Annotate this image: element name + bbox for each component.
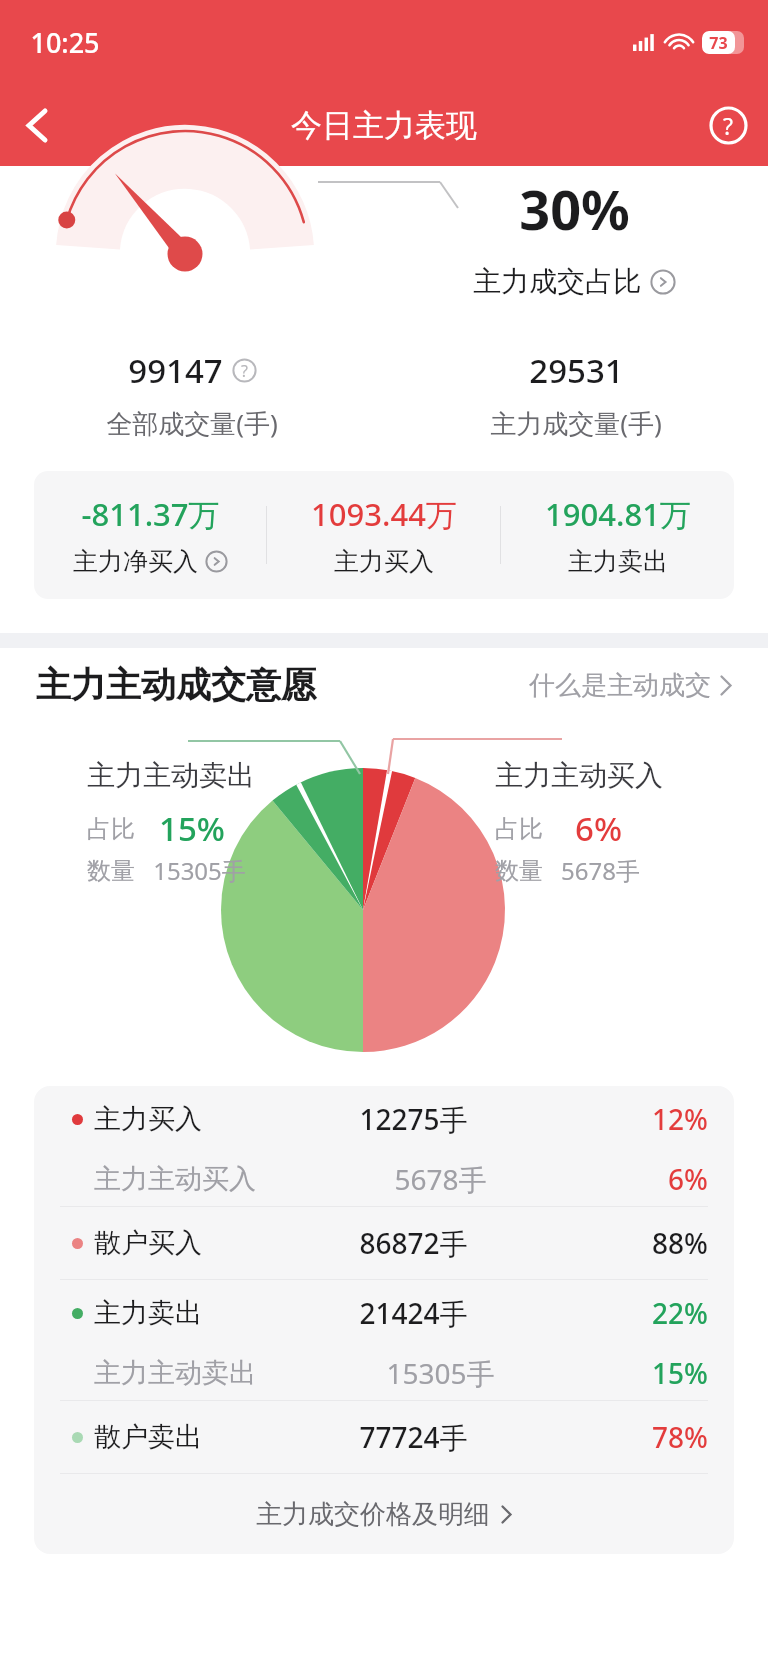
- button[interactable]: Help: [688, 84, 768, 166]
- staticText: 数量: [87, 856, 135, 886]
- button[interactable]: 主力成交价格及明细: [34, 1474, 734, 1554]
- staticText: 1904.81万: [545, 493, 691, 535]
- staticText: 主力成交占比: [473, 264, 641, 299]
- staticText: 主力卖出: [94, 1296, 202, 1330]
- staticText: 6%: [575, 806, 622, 851]
- staticText: 30%: [519, 172, 630, 246]
- staticText: 主力主动卖出: [87, 758, 255, 793]
- staticText: 29531: [529, 348, 624, 393]
- staticText: 15%: [652, 1354, 708, 1392]
- button[interactable]: 主力买入: [34, 1086, 734, 1206]
- staticText: -811.37万: [81, 493, 220, 535]
- staticText: 78%: [652, 1418, 708, 1456]
- staticText: 99147: [128, 348, 223, 393]
- staticText: 6%: [668, 1160, 708, 1198]
- staticText: 15305手: [386, 1354, 495, 1392]
- staticText: 15%: [159, 806, 225, 851]
- staticText: 散户卖出: [94, 1420, 202, 1454]
- button[interactable]: 主力卖出: [34, 1280, 734, 1400]
- staticText: 12%: [652, 1100, 708, 1138]
- button[interactable]: Back: [0, 84, 74, 166]
- staticText: 数量: [495, 856, 543, 886]
- staticText: 77724手: [359, 1418, 468, 1456]
- staticText: 1093.44万: [311, 493, 457, 535]
- staticText: 15305手: [153, 854, 246, 887]
- staticText: 5678手: [394, 1160, 487, 1198]
- staticText: 12275手: [359, 1100, 468, 1138]
- staticText: 主力成交价格及明细: [256, 1498, 490, 1531]
- staticText: 主力买入: [334, 546, 434, 577]
- staticText: 散户买入: [94, 1226, 202, 1260]
- button[interactable]: 散户买入: [34, 1207, 734, 1279]
- staticText: 主力买入: [94, 1102, 202, 1136]
- staticText: 主力主动卖出: [94, 1356, 256, 1390]
- staticText: 21424手: [359, 1294, 468, 1332]
- staticText: 73: [709, 32, 728, 54]
- staticText: 10:25: [30, 24, 100, 61]
- staticText: 86872手: [359, 1224, 468, 1262]
- staticText: 主力成交量(手): [490, 405, 662, 441]
- staticText: 主力主动买入: [495, 758, 663, 793]
- staticText: ?: [241, 360, 248, 382]
- staticText: ?: [723, 110, 733, 141]
- button[interactable]: -811.37万: [34, 493, 266, 577]
- button[interactable]: 散户卖出: [34, 1401, 734, 1473]
- staticText: 22%: [652, 1294, 708, 1332]
- staticText: 占比: [87, 814, 135, 844]
- staticText: 5678手: [561, 854, 640, 887]
- button[interactable]: 99147: [128, 348, 257, 393]
- button[interactable]: 什么是主动成交: [529, 669, 732, 702]
- staticText: 主力主动成交意愿: [36, 663, 316, 707]
- staticText: 什么是主动成交: [529, 669, 711, 702]
- staticText: 主力卖出: [568, 546, 668, 577]
- button[interactable]: 主力成交占比: [473, 264, 676, 299]
- staticText: 主力净买入: [73, 546, 198, 577]
- staticText: 全部成交量(手): [106, 405, 278, 441]
- staticText: 占比: [495, 814, 543, 844]
- staticText: 今日主力表现: [291, 106, 477, 145]
- staticText: 主力主动买入: [94, 1162, 256, 1196]
- staticText: 88%: [652, 1224, 708, 1262]
